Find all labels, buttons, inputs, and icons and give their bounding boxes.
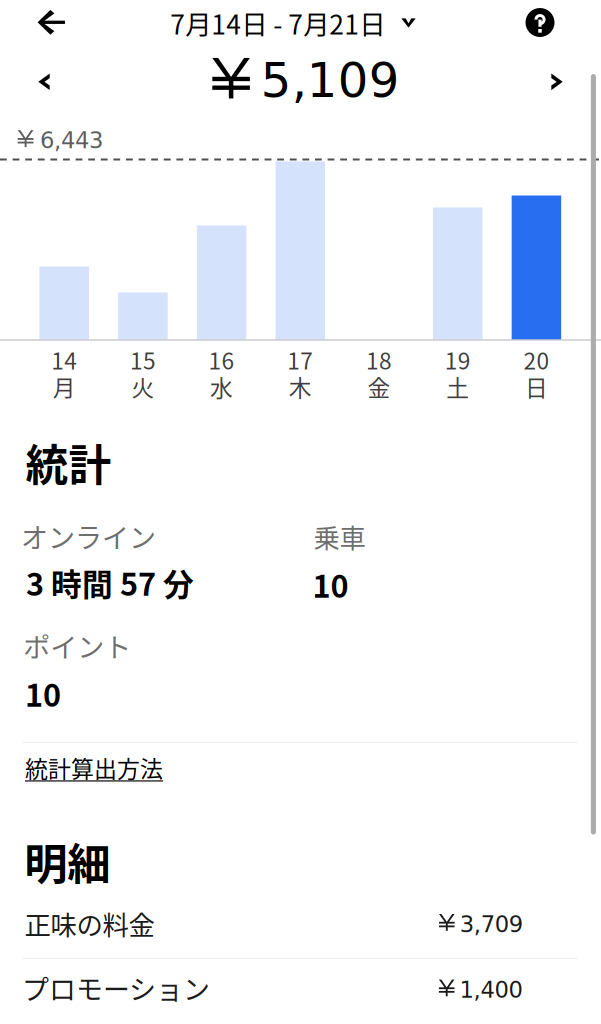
staticText: 16 [209, 343, 235, 376]
staticText: 月 [53, 370, 76, 403]
staticText: 7月14日 - 7月21日 [170, 4, 385, 42]
staticText: 3,709 [460, 911, 523, 937]
button[interactable]: 統計算出方法 [23, 741, 165, 794]
button[interactable]: Previous week [22, 60, 66, 104]
staticText: プロモーション [22, 969, 210, 1008]
staticText: オンライン [21, 517, 156, 556]
staticText: 火 [131, 370, 154, 403]
staticText: 14 [51, 343, 77, 376]
staticText: 乗車 [314, 517, 366, 556]
staticText: 明細 [24, 830, 110, 892]
button[interactable]: Back [18, 0, 84, 45]
staticText: 金 [367, 370, 390, 403]
staticText: 土 [446, 370, 469, 403]
staticText: 20 [523, 343, 549, 376]
staticText: 木 [289, 370, 312, 403]
staticText: 水 [210, 370, 233, 403]
button[interactable]: Help [516, 0, 564, 45]
staticText: 5,109 [261, 53, 400, 108]
staticText: 10 [313, 562, 349, 607]
staticText: 3 時間 57 分 [26, 560, 194, 605]
staticText: 18 [366, 343, 392, 376]
staticText: 統計算出方法 [25, 751, 163, 784]
staticText: 統計 [25, 432, 111, 493]
staticText: ポイント [23, 626, 131, 665]
staticText: 19 [445, 343, 471, 376]
staticText: 15 [130, 343, 156, 376]
staticText: 17 [287, 343, 313, 376]
staticText: 10 [25, 671, 61, 716]
staticText: 正味の料金 [24, 904, 154, 943]
button[interactable]: Next week [535, 60, 579, 104]
staticText: 日 [525, 370, 548, 403]
staticText: 1,400 [459, 977, 522, 1003]
staticText: 6,443 [40, 127, 103, 154]
button[interactable]: 7月14日 - 7月21日 [170, 0, 416, 52]
